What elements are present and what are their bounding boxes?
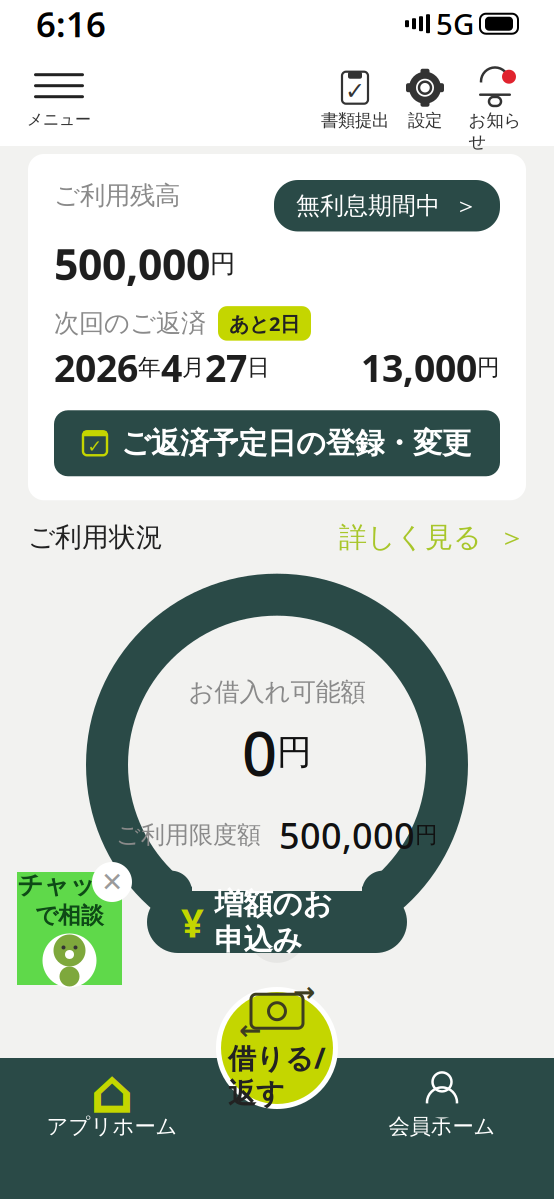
- staticText: 月: [182, 354, 205, 381]
- button[interactable]: ✓: [320, 70, 390, 131]
- staticText: メニュー: [27, 110, 91, 129]
- staticText: 会員ホーム: [388, 1113, 495, 1140]
- staticText: 無利息期間中 ＞: [296, 191, 478, 220]
- staticText: ご利用限度額: [116, 820, 261, 850]
- staticText: 年: [138, 354, 161, 381]
- button[interactable]: チャットを閉じる: [92, 862, 132, 902]
- staticText: 2026: [54, 343, 138, 392]
- staticText: ✓: [345, 77, 365, 104]
- staticText: あと2日: [229, 310, 300, 337]
- button[interactable]: 無利息期間中 ＞: [274, 180, 500, 231]
- staticText: で相談: [35, 902, 104, 929]
- staticText: ✓: [87, 436, 102, 456]
- button[interactable]: →: [216, 987, 338, 1109]
- staticText: 円: [277, 731, 312, 774]
- staticText: 27: [205, 343, 247, 392]
- staticText: ご利用残高: [54, 180, 180, 211]
- staticText: 円: [210, 248, 235, 279]
- button[interactable]: ✓: [54, 410, 500, 476]
- staticText: 設定: [408, 110, 442, 131]
- staticText: 500,000: [279, 811, 415, 859]
- staticText: →: [293, 977, 315, 1007]
- button[interactable]: チャット: [17, 872, 122, 985]
- staticText: ご返済予定日の登録・変更: [121, 425, 471, 461]
- staticText: 増額のお申込み: [214, 886, 332, 958]
- staticText: お知らせ: [468, 110, 521, 152]
- staticText: 5G: [436, 4, 474, 43]
- button[interactable]: メニュー: [24, 70, 94, 129]
- button[interactable]: ¥: [147, 891, 407, 953]
- staticText: 円: [415, 821, 438, 849]
- staticText: 借りる/返す: [228, 1039, 326, 1111]
- staticText: ご利用状況: [28, 521, 163, 554]
- staticText: ✕: [101, 867, 123, 897]
- staticText: 次回のご返済: [54, 308, 206, 339]
- staticText: 500,000: [54, 235, 210, 292]
- staticText: 詳しく見る: [339, 520, 482, 555]
- button[interactable]: ⌂: [12, 1073, 212, 1140]
- button[interactable]: お知らせ: [460, 70, 530, 152]
- staticText: チャット: [17, 869, 121, 901]
- staticText: ＞: [498, 520, 526, 555]
- staticText: アプリホーム: [46, 1113, 177, 1140]
- staticText: 円: [477, 354, 500, 381]
- staticText: ↻: [258, 908, 296, 960]
- button[interactable]: 詳しく見る: [339, 520, 526, 555]
- staticText: 書類提出: [321, 110, 389, 131]
- staticText: ←: [239, 1015, 261, 1045]
- staticText: 0: [242, 712, 277, 793]
- button[interactable]: 設定: [390, 70, 460, 131]
- staticText: 6:16: [36, 1, 106, 47]
- staticText: お借入れ可能額: [188, 676, 365, 708]
- staticText: 日: [247, 354, 270, 381]
- staticText: ⌂: [90, 1057, 134, 1126]
- staticText: 4: [161, 343, 182, 392]
- button[interactable]: 残高を更新: [248, 905, 306, 963]
- staticText: 13,000: [361, 343, 477, 392]
- button[interactable]: 会員ホーム: [342, 1073, 542, 1140]
- staticText: ¥: [181, 895, 204, 948]
